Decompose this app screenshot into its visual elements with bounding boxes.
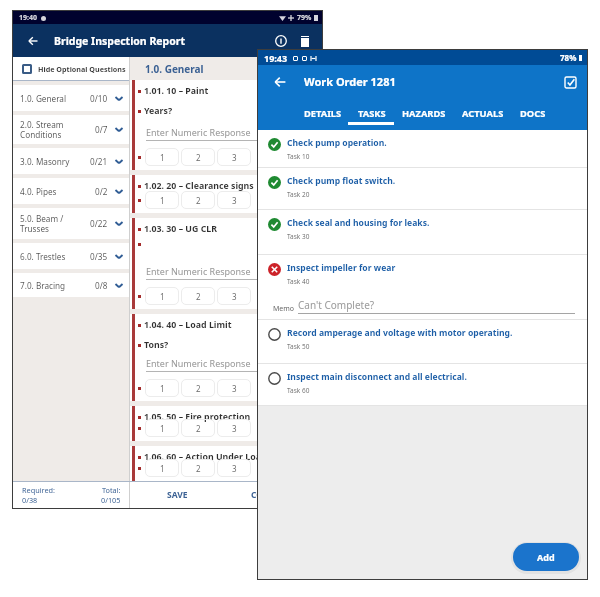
staticText: 0/21 xyxy=(90,156,108,167)
button[interactable]: 3 xyxy=(217,287,251,305)
button[interactable]: 3 xyxy=(217,459,251,477)
staticText: Hide Optional Questions xyxy=(38,64,126,74)
button[interactable]: 1 xyxy=(145,379,179,397)
button[interactable]: 5.0. Beam / Trusses xyxy=(13,208,129,239)
button[interactable]: COMPLETE xyxy=(225,482,322,508)
staticText: Check pump float switch. xyxy=(287,175,396,187)
staticText: Task 40 xyxy=(287,277,310,286)
staticText: Task 60 xyxy=(287,386,310,395)
staticText: 78% xyxy=(560,52,577,63)
staticText: 3 xyxy=(232,463,237,474)
button[interactable]: Check pump operation. xyxy=(258,130,587,168)
staticText: Total: xyxy=(102,485,121,495)
button[interactable]: Inspect main disconnect and all electric… xyxy=(258,364,587,406)
staticText: 0/38 xyxy=(22,495,38,505)
button[interactable]: TASKS xyxy=(350,98,394,130)
button[interactable]: 2 xyxy=(181,379,215,397)
button[interactable]: 2 xyxy=(181,191,215,209)
staticText: 3 xyxy=(232,152,237,163)
staticText: 0/22 xyxy=(90,218,108,229)
button[interactable]: 3 xyxy=(217,148,251,166)
button[interactable]: 1 xyxy=(145,419,179,437)
button[interactable]: 1 xyxy=(145,287,179,305)
button[interactable]: 6.0. Trestles xyxy=(13,243,129,269)
staticText: 0/105 xyxy=(101,495,121,505)
button[interactable]: 3.0. Masonry xyxy=(13,148,129,174)
button[interactable]: ACTUALS xyxy=(454,98,512,130)
staticText: 1 xyxy=(160,195,165,206)
button[interactable]: DOCS xyxy=(512,98,554,130)
button[interactable]: 4.0. Pipes xyxy=(13,178,129,204)
staticText: 1.04. 40 – Load Limit xyxy=(144,319,232,331)
button[interactable]: 2 xyxy=(181,459,215,477)
button[interactable]: 2 xyxy=(181,287,215,305)
staticText: Can't Complete? xyxy=(298,298,375,312)
button[interactable]: Inspect impeller for wear xyxy=(258,255,587,320)
staticText: HAZARDS xyxy=(402,107,446,120)
button[interactable]: 3 xyxy=(217,419,251,437)
staticText: 1.01. 10 – Paint xyxy=(144,85,209,97)
staticText: Bridge Inspection Report xyxy=(54,34,186,48)
staticText: Enter Numeric Response xyxy=(146,265,251,277)
button[interactable]: 7.0. Bracing xyxy=(13,273,129,297)
button[interactable]: Delete xyxy=(293,29,317,53)
button[interactable]: Check seal and housing for leaks. xyxy=(258,210,587,255)
button[interactable]: HAZARDS xyxy=(394,98,454,130)
staticText: 1.05. 50 – Fire protection xyxy=(144,411,251,423)
staticText: Inspect impeller for wear xyxy=(287,262,396,274)
staticText: 2 xyxy=(196,152,201,163)
button[interactable]: Edit xyxy=(557,69,583,95)
button[interactable]: 2.0. Stream Conditions xyxy=(13,115,129,144)
staticText: 3 xyxy=(232,291,237,302)
staticText: Task 50 xyxy=(287,342,310,351)
staticText: 6.0. Trestles xyxy=(20,251,66,262)
staticText: Enter Numeric Response xyxy=(146,357,251,369)
button[interactable]: 3 xyxy=(217,379,251,397)
button[interactable]: Info xyxy=(269,29,293,53)
button[interactable]: 1.0. General xyxy=(13,85,129,111)
button[interactable]: Add xyxy=(513,543,579,571)
button[interactable]: 1 xyxy=(145,459,179,477)
staticText: 5.0. Beam / Trusses xyxy=(20,213,64,234)
button[interactable]: 2 xyxy=(181,148,215,166)
staticText: Check seal and housing for leaks. xyxy=(287,217,430,229)
staticText: Task 30 xyxy=(287,232,310,241)
button[interactable]: 3 xyxy=(217,191,251,209)
staticText: 1.02. 20 – Clearance signs xyxy=(144,180,254,192)
button[interactable]: 1 xyxy=(145,191,179,209)
staticText: 3 xyxy=(232,423,237,434)
button[interactable]: 2 xyxy=(181,419,215,437)
button[interactable]: 1 xyxy=(145,148,179,166)
staticText: 1 xyxy=(160,152,165,163)
staticText: 1 xyxy=(160,463,165,474)
staticText: Memo xyxy=(273,304,295,314)
button[interactable]: SAVE xyxy=(130,482,225,508)
staticText: Task 10 xyxy=(287,152,310,161)
staticText: Work Order 1281 xyxy=(304,74,396,89)
button[interactable]: Check pump float switch. xyxy=(258,168,587,210)
staticText: 1 xyxy=(160,291,165,302)
staticText: Add xyxy=(537,551,555,563)
staticText: 1.0. General xyxy=(20,93,67,104)
staticText: 3.0. Masonry xyxy=(20,156,70,167)
staticText: Check pump operation. xyxy=(287,137,387,149)
staticText: Enter Numeric Response xyxy=(146,126,251,138)
staticText: 19:40 xyxy=(19,13,37,23)
staticText: 0/2 xyxy=(95,186,108,197)
button[interactable]: Hide Optional Questions xyxy=(13,57,129,80)
staticText: 7.0. Bracing xyxy=(20,280,66,291)
staticText: 0/8 xyxy=(95,280,108,291)
staticText: 2 xyxy=(196,463,201,474)
staticText: COMPLETE xyxy=(251,489,296,501)
button[interactable]: Back xyxy=(20,28,46,54)
staticText: 3 xyxy=(232,383,237,394)
staticText: 1 xyxy=(160,383,165,394)
button[interactable]: Record amperage and voltage with motor o… xyxy=(258,320,587,364)
staticText: 2 xyxy=(196,423,201,434)
staticText: 1.0. General xyxy=(145,62,204,76)
staticText: 2.0. Stream Conditions xyxy=(20,119,64,140)
staticText: Record amperage and voltage with motor o… xyxy=(287,327,513,339)
staticText: Required: xyxy=(22,485,55,495)
button[interactable]: DETAILS xyxy=(296,98,350,130)
button[interactable]: Back xyxy=(265,67,295,97)
